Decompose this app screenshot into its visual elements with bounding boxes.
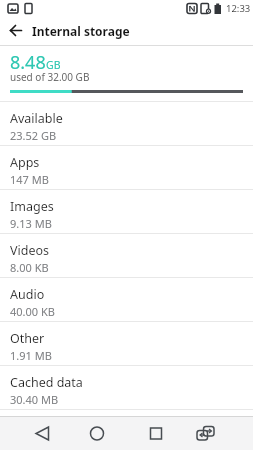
staticText: 40.00 KB [10, 304, 55, 319]
staticText: 147 MB [10, 172, 49, 187]
staticText: 8.00 KB [10, 260, 49, 275]
staticText: GB [46, 58, 61, 72]
staticText: Available [10, 110, 63, 127]
staticText: Images [10, 198, 54, 215]
staticText: Other [10, 330, 45, 347]
staticText: Internal storage [32, 23, 130, 39]
staticText: used of 32.00 GB [10, 70, 90, 84]
staticText: Apps [10, 154, 40, 171]
staticText: Videos [10, 242, 50, 259]
staticText: Audio [10, 286, 45, 303]
staticText: 30.40 MB [10, 392, 59, 407]
staticText: Cached data [10, 374, 83, 391]
staticText: 8.48 [10, 50, 46, 75]
staticText: 9.13 MB [10, 216, 52, 231]
staticText: 23.52 GB [10, 128, 57, 143]
staticText: 1.91 MB [10, 348, 52, 363]
staticText: 12:33 [226, 2, 251, 15]
